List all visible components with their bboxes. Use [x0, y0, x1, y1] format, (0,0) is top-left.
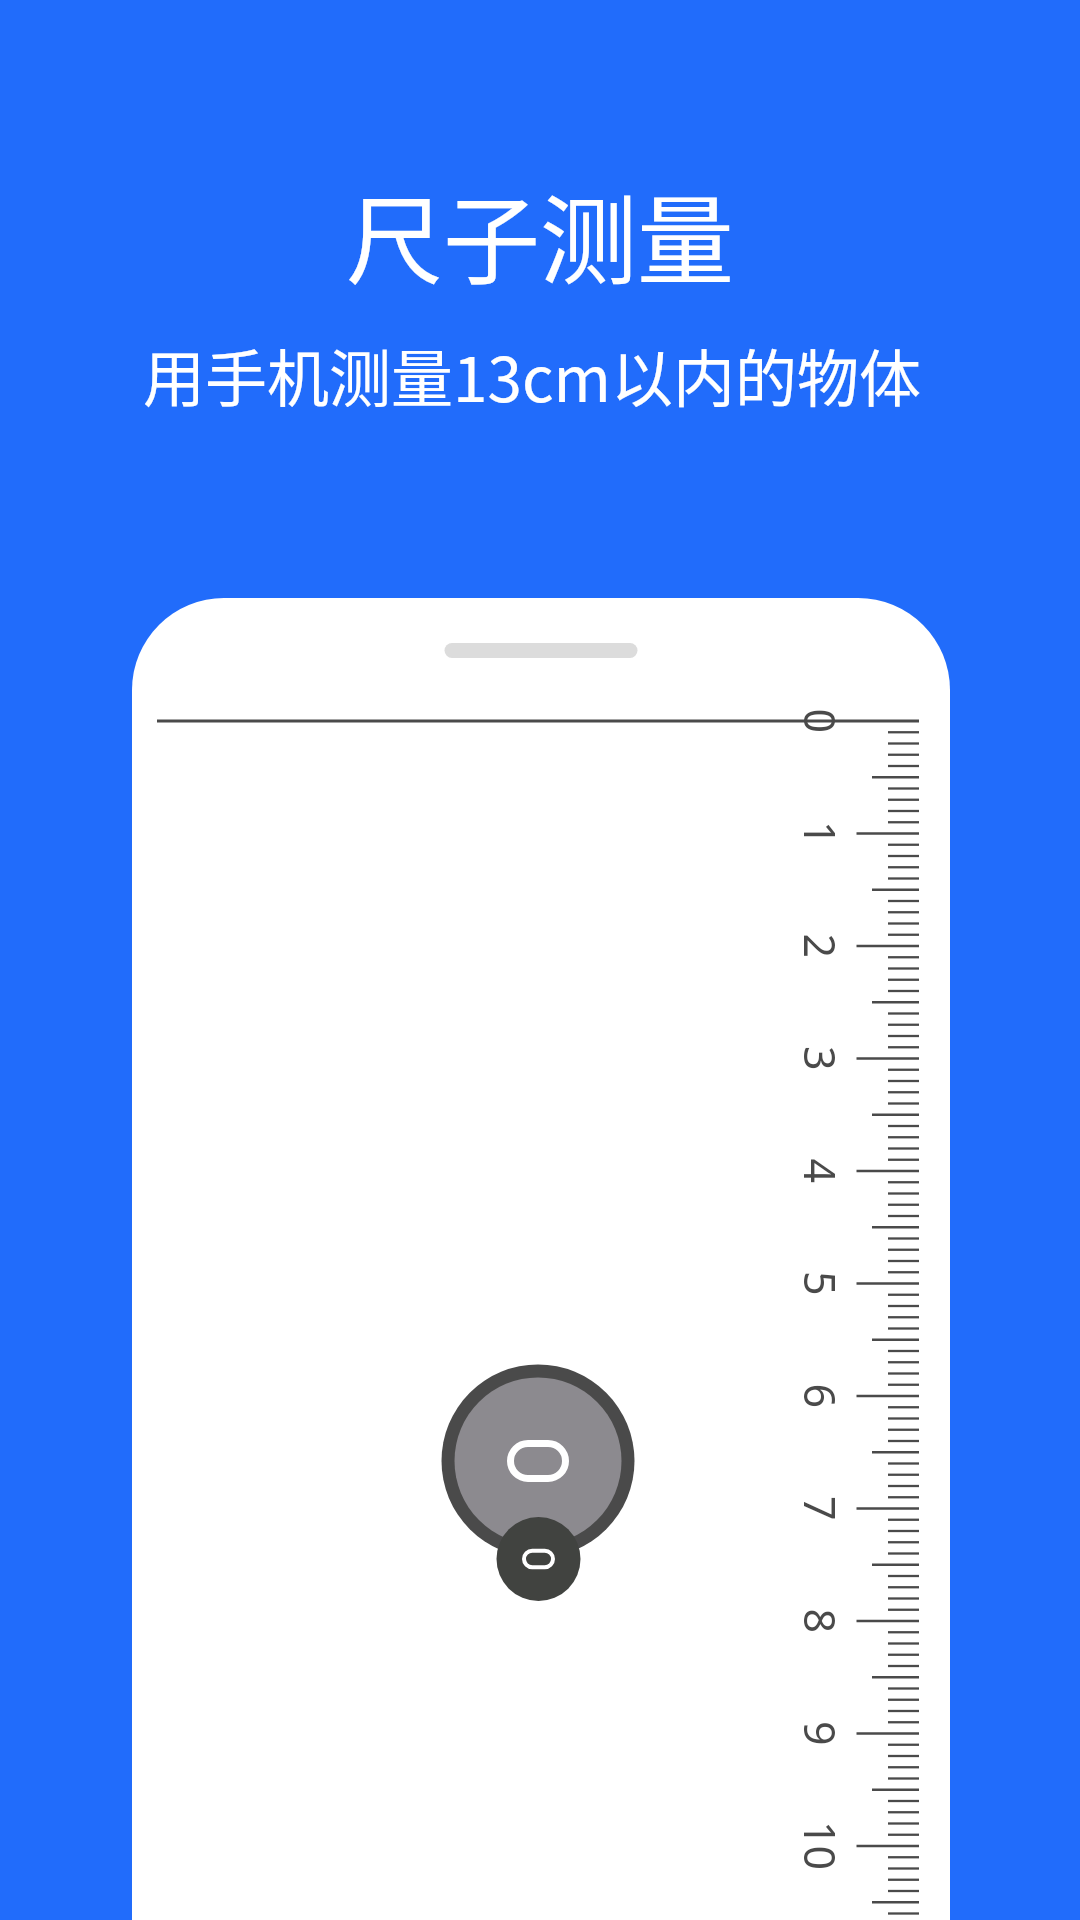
staticText: 尺子测量	[346, 163, 734, 303]
button[interactable]: Measurement handle	[442, 1365, 635, 1558]
staticText: 用手机测量13cm以内的物体	[143, 330, 921, 420]
